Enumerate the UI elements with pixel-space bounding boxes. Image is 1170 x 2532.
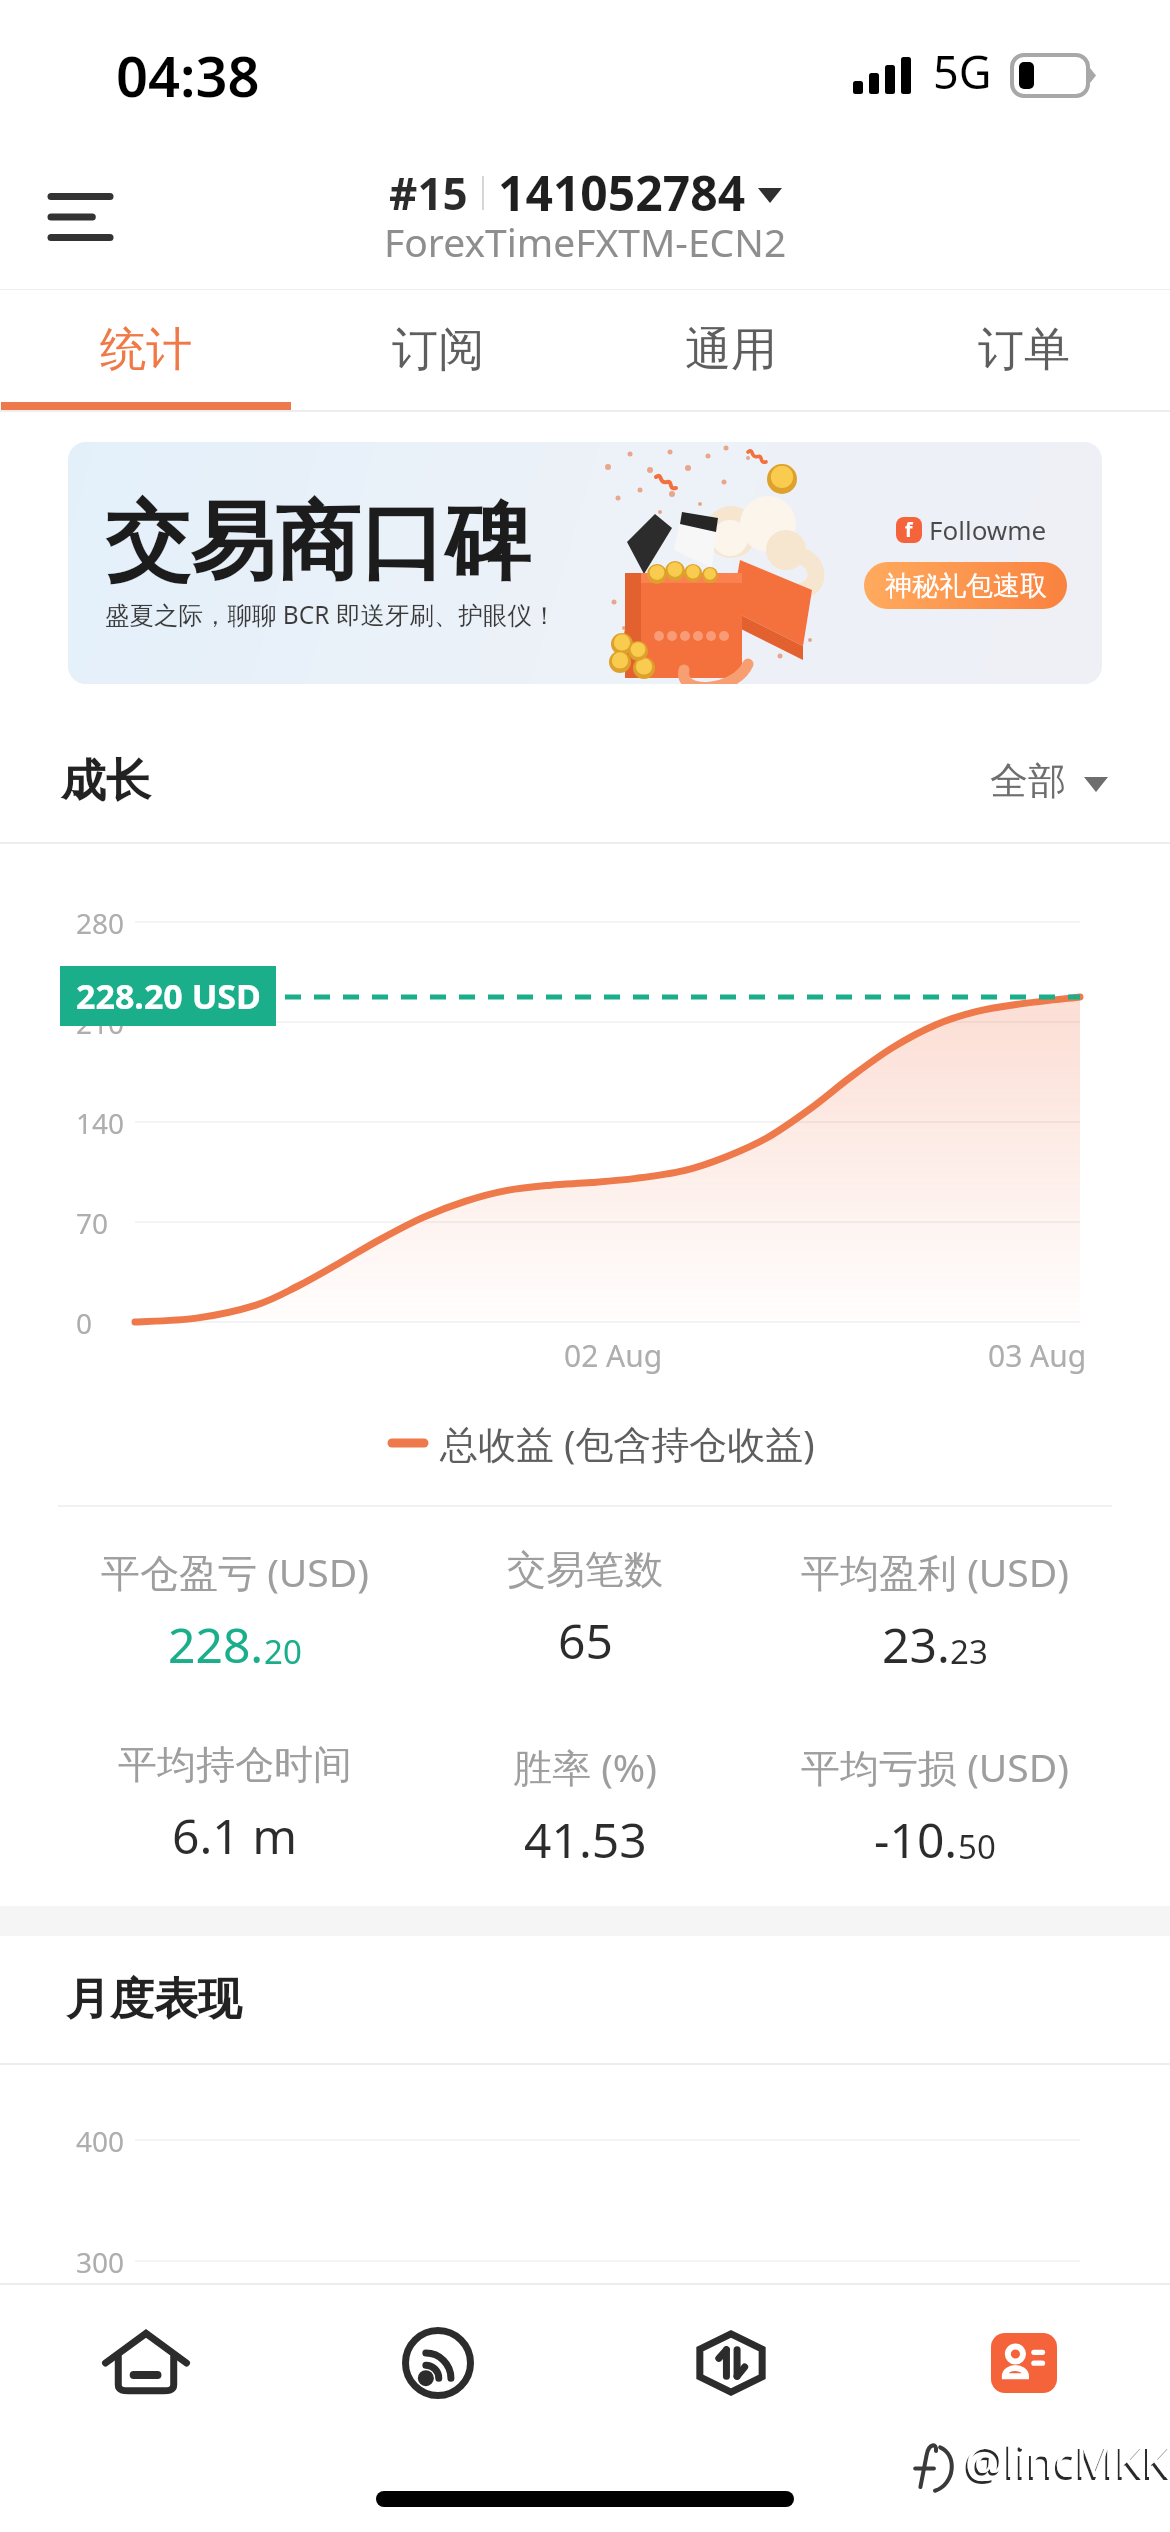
staticText: 41.53: [524, 1807, 647, 1872]
button[interactable]: 订单: [877, 290, 1170, 412]
staticText: 平均亏损 (USD): [801, 1740, 1069, 1793]
staticText: 盛夏之际，聊聊 BCR 即送牙刷、护眼仪！: [105, 598, 557, 631]
staticText: 70: [76, 1204, 109, 1242]
staticText: 月度表现: [66, 1972, 242, 2027]
staticText: 通用: [685, 321, 777, 379]
staticText: 300: [76, 2243, 125, 2281]
staticText: 统计: [100, 321, 192, 379]
staticText: 141052784: [498, 160, 746, 225]
staticText: 成长: [61, 753, 151, 810]
staticText: 全部: [990, 757, 1066, 805]
staticText: 228.: [168, 1612, 264, 1677]
button[interactable]: 交易商口碑: [68, 442, 1102, 684]
staticText: f: [905, 517, 913, 543]
staticText: 03 Aug: [988, 1335, 1087, 1376]
button[interactable]: Home: [0, 2285, 292, 2441]
staticText: 6.1 m: [172, 1803, 298, 1868]
staticText: 65: [558, 1608, 613, 1673]
staticText: 210: [76, 1004, 125, 1042]
staticText: 228.20 USD: [76, 973, 261, 1019]
staticText: @lincMKK: [965, 2430, 1170, 2490]
staticText: 平均持仓时间: [118, 1740, 352, 1789]
staticText: 50: [958, 1824, 996, 1869]
staticText: Followme: [929, 512, 1047, 547]
staticText: 280: [76, 904, 125, 942]
button[interactable]: 神秘礼包速取: [864, 562, 1067, 609]
staticText: 胜率 (%): [513, 1740, 657, 1793]
staticText: 总收益 (包含持仓收益): [440, 1417, 815, 1469]
staticText: 交易商口碑: [105, 489, 530, 596]
staticText: @lincMKK: [963, 2433, 1168, 2493]
staticText: 23: [950, 1629, 988, 1674]
staticText: 20: [264, 1629, 302, 1674]
button[interactable]: #15: [384, 160, 787, 278]
button[interactable]: Trade: [584, 2285, 877, 2441]
button[interactable]: Feed: [292, 2285, 584, 2441]
staticText: 订单: [978, 321, 1070, 379]
staticText: 平仓盈亏 (USD): [101, 1545, 369, 1598]
staticText: -10.: [874, 1807, 958, 1872]
staticText: 订阅: [392, 321, 484, 379]
staticText: 神秘礼包速取: [885, 569, 1047, 603]
staticText: 400: [76, 2122, 125, 2160]
staticText: #15: [389, 163, 468, 223]
button[interactable]: Menu: [8, 151, 153, 283]
button[interactable]: Profile: [877, 2285, 1170, 2441]
staticText: 04:38: [116, 37, 260, 113]
staticText: 5G: [933, 41, 992, 102]
staticText: 140: [76, 1104, 125, 1142]
staticText: ForexTimeFXTM-ECN2: [384, 215, 787, 268]
staticText: 平均盈利 (USD): [801, 1545, 1069, 1598]
staticText: 交易笔数: [507, 1545, 663, 1594]
button[interactable]: 统计: [0, 290, 292, 412]
staticText: 23.: [882, 1612, 950, 1677]
staticText: 0: [76, 1304, 93, 1342]
staticText: 02 Aug: [564, 1335, 663, 1376]
button[interactable]: 全部: [990, 757, 1108, 805]
button[interactable]: 通用: [584, 290, 877, 412]
button[interactable]: 订阅: [292, 290, 584, 412]
